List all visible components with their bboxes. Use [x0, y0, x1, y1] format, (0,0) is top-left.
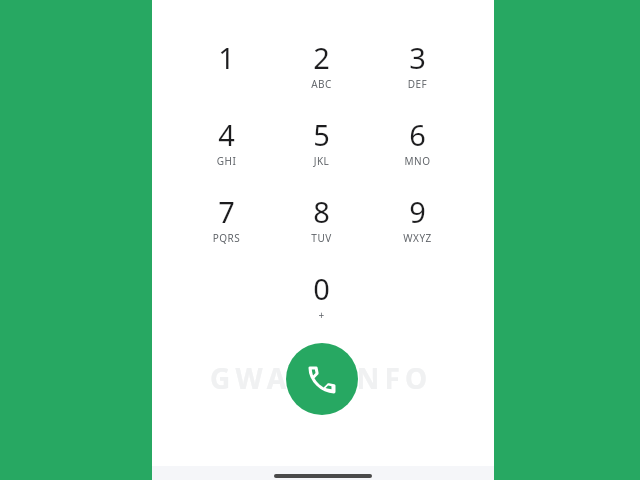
staticText: 9	[370, 192, 465, 231]
staticText: 4	[179, 115, 274, 154]
button[interactable]: 6 MNO	[370, 109, 465, 186]
staticText: GWARDINFO	[210, 359, 433, 397]
button[interactable]: 3 DEF	[370, 32, 465, 109]
staticText: ABC	[274, 77, 369, 91]
staticText: JKL	[274, 154, 369, 168]
button[interactable]: 9 WXYZ	[370, 186, 465, 263]
staticText: GHI	[179, 154, 274, 168]
button[interactable]: 0 +	[274, 263, 369, 340]
staticText: 8	[274, 192, 369, 231]
staticText: 6	[370, 115, 465, 154]
staticText: +	[274, 308, 369, 322]
button[interactable]: Call	[286, 343, 358, 415]
staticText: 7	[179, 192, 274, 231]
staticText: WXYZ	[370, 231, 465, 245]
button[interactable]: 7 PQRS	[179, 186, 274, 263]
button[interactable]: 2 ABC	[274, 32, 369, 109]
button[interactable]: 8 TUV	[274, 186, 369, 263]
staticText: TUV	[274, 231, 369, 245]
button[interactable]: 1	[179, 32, 274, 109]
staticText: DEF	[370, 77, 465, 91]
staticText: 0	[274, 269, 369, 308]
staticText: 5	[274, 115, 369, 154]
button[interactable]: 4 GHI	[179, 109, 274, 186]
staticText: 2	[274, 38, 369, 77]
staticText: PQRS	[179, 231, 274, 245]
staticText: 3	[370, 38, 465, 77]
staticText: MNO	[370, 154, 465, 168]
button[interactable]: 5 JKL	[274, 109, 369, 186]
staticText: 1	[179, 38, 274, 77]
